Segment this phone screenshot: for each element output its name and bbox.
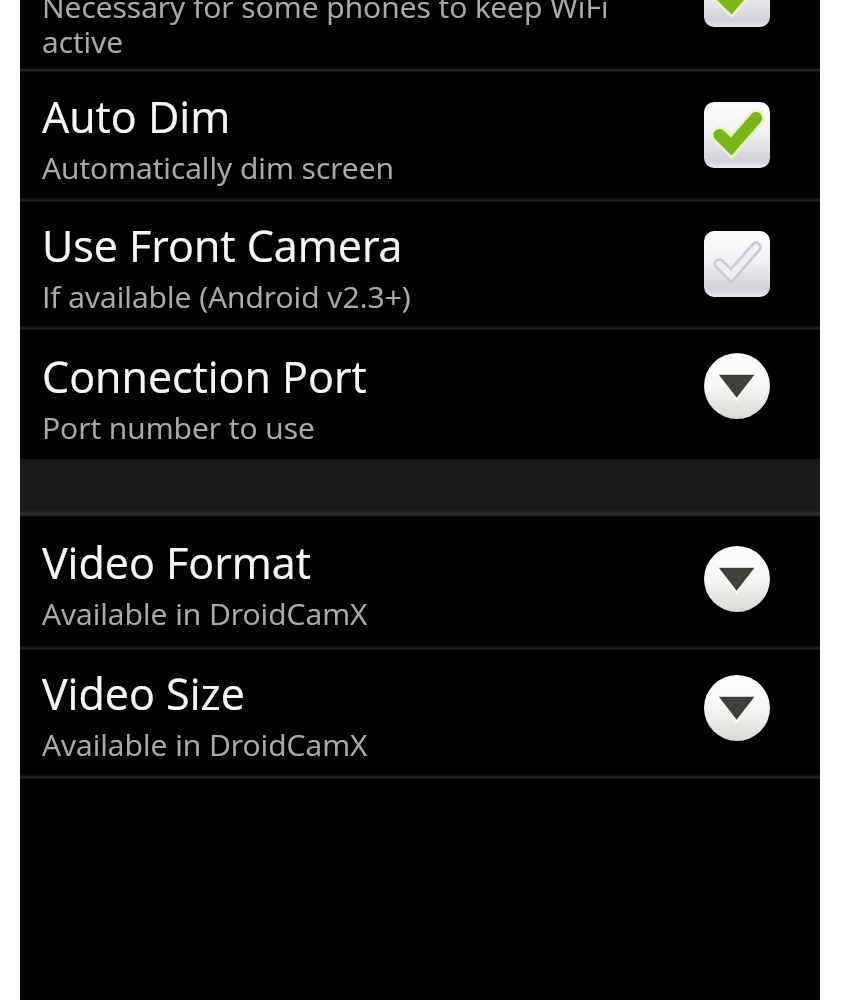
staticText: Connection Port — [42, 347, 367, 406]
button[interactable]: Video Format — [20, 517, 820, 645]
staticText: Video Size — [42, 664, 245, 723]
staticText: Auto Dim — [42, 87, 231, 146]
button[interactable]: Auto Dim — [20, 73, 820, 197]
staticText: Available in DroidCamX — [42, 724, 368, 765]
button[interactable]: Show options — [704, 353, 770, 419]
button[interactable]: Show options — [704, 675, 770, 741]
staticText: Available in DroidCamX — [42, 593, 368, 634]
button[interactable]: Enabled — [704, 102, 770, 168]
button[interactable]: Connection Port — [20, 331, 820, 459]
staticText: Use Front Camera — [42, 216, 403, 275]
button[interactable]: Use Front Camera — [20, 203, 820, 325]
staticText: Automatically dim screen — [42, 147, 394, 188]
button[interactable]: Disabled — [704, 231, 770, 297]
staticText: Video Format — [42, 533, 311, 592]
button[interactable]: Enabled — [704, 0, 770, 27]
staticText: Necessary for some phones to keep WiFi a… — [42, 0, 642, 53]
staticText: Port number to use — [42, 407, 315, 448]
staticText: If available (Android v2.3+) — [42, 276, 411, 317]
button[interactable]: Video Size — [20, 651, 820, 774]
button[interactable]: Show options — [704, 546, 770, 612]
button[interactable]: Necessary for some phones to keep WiFi a… — [20, 0, 820, 67]
